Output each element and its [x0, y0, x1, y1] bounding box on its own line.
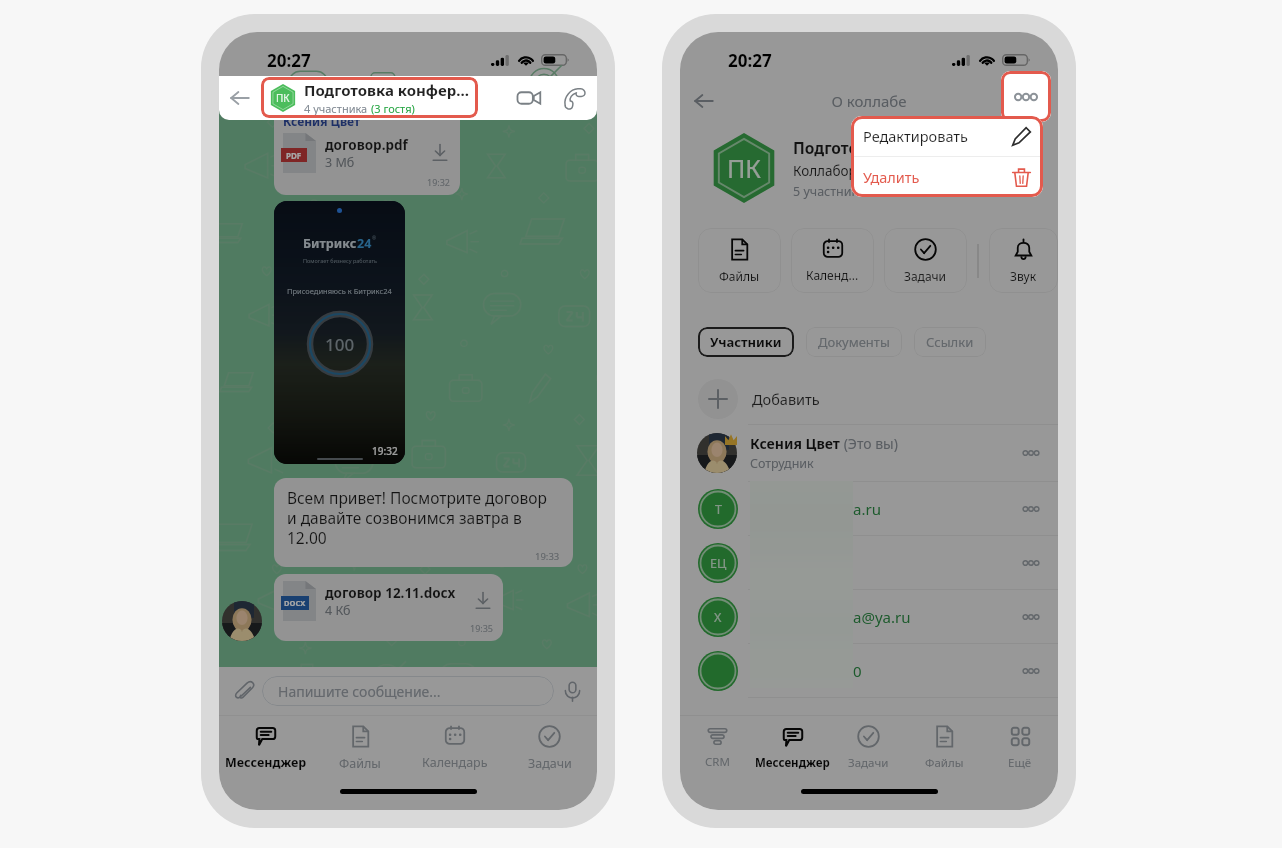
staticText: CRM: [705, 754, 730, 770]
button[interactable]: Файлы: [313, 716, 407, 780]
staticText: Подготовка конференции: [793, 137, 1001, 158]
staticText: ПК: [727, 151, 761, 185]
staticText: Задачи: [528, 755, 572, 772]
button[interactable]: Member options: [1017, 495, 1045, 523]
staticText: 19:32: [372, 444, 398, 458]
button[interactable]: Редактировать: [851, 116, 1043, 156]
button[interactable]: Добавить: [680, 374, 1058, 424]
staticText: Т: [715, 501, 722, 518]
staticText: 4 Кб: [325, 602, 351, 619]
button[interactable]: Ксения Цвет: [680, 425, 1058, 481]
button[interactable]: Удалить: [851, 157, 1043, 197]
button[interactable]: Download: [472, 590, 494, 612]
staticText: Календарь: [422, 754, 488, 771]
button[interactable]: ПК: [261, 77, 478, 118]
button[interactable]: Файлы: [906, 716, 982, 780]
staticText: Задачи: [848, 755, 889, 771]
staticText: Задачи: [904, 268, 947, 284]
staticText: Звук: [1010, 268, 1037, 284]
staticText: Мессенджер: [755, 755, 830, 771]
staticText: Присоединяюсь к Битрикс24: [287, 286, 392, 296]
staticText: ®: [372, 235, 377, 242]
staticText: a.ru: [853, 499, 881, 519]
staticText: Файлы: [339, 755, 381, 772]
staticText: договор.pdf: [325, 136, 408, 154]
button[interactable]: CRM: [680, 716, 755, 780]
button[interactable]: More options: [1001, 71, 1051, 122]
button[interactable]: Участники: [698, 327, 794, 357]
staticText: Удалить: [863, 167, 1011, 187]
staticText: договор 12.11.docx: [325, 584, 456, 602]
button[interactable]: ЕЦ: [680, 536, 1058, 589]
button[interactable]: Ссылки: [914, 327, 986, 357]
staticText: Документы: [818, 333, 890, 351]
button[interactable]: Мессенджер: [755, 716, 830, 780]
staticText: (3 гостя): [371, 101, 415, 116]
staticText: Мессенджер: [225, 754, 307, 771]
staticText: a@ya.ru: [853, 607, 911, 627]
button[interactable]: Member options: [1017, 549, 1045, 577]
button[interactable]: 0: [680, 644, 1058, 697]
staticText: Участники: [710, 333, 782, 351]
button[interactable]: Voice message: [557, 676, 587, 706]
staticText: (Это вы): [840, 434, 898, 453]
button[interactable]: Напишите сообщение...: [262, 676, 554, 706]
staticText: 20:27: [267, 49, 311, 72]
staticText: Файлы: [925, 755, 964, 771]
staticText: 5 участников: [793, 183, 873, 200]
button[interactable]: Мессенджер: [219, 716, 313, 780]
button[interactable]: Audio call: [551, 76, 597, 120]
staticText: Подготовка конфер...: [304, 80, 469, 100]
button[interactable]: Т: [680, 482, 1058, 535]
staticText: Всем привет! Посмотрите договор и давайт…: [287, 487, 560, 549]
staticText: Редактировать: [863, 126, 1011, 146]
button[interactable]: Ещё: [982, 716, 1058, 780]
button[interactable]: Back: [219, 76, 261, 120]
button[interactable]: Member options: [1017, 439, 1045, 467]
staticText: Коллаборация: [793, 162, 889, 180]
staticText: 3 Мб: [325, 154, 355, 171]
button[interactable]: Member options: [1017, 603, 1045, 631]
staticText: Помогает бизнесу работать: [303, 257, 377, 264]
button[interactable]: Календ...: [791, 228, 874, 293]
staticText: Ещё: [1008, 755, 1032, 771]
staticText: Ксения Цвет: [750, 434, 840, 453]
staticText: Календ...: [806, 267, 859, 283]
staticText: 19:35: [470, 622, 494, 634]
staticText: 20:27: [728, 49, 772, 72]
button[interactable]: Задачи: [502, 716, 597, 780]
button[interactable]: Файлы: [698, 228, 781, 293]
button[interactable]: Video call: [507, 76, 551, 120]
staticText: ПК: [276, 91, 290, 105]
button[interactable]: Звук: [989, 228, 1058, 293]
button[interactable]: Задачи: [830, 716, 906, 780]
button[interactable]: Задачи: [884, 228, 967, 293]
button[interactable]: Attach file: [229, 676, 259, 706]
button[interactable]: Х: [680, 590, 1058, 643]
button[interactable]: Документы: [806, 327, 902, 357]
staticText: 19:33: [535, 550, 560, 563]
staticText: Добавить: [752, 389, 820, 409]
staticText: DOCX: [284, 598, 306, 608]
button[interactable]: Календарь: [407, 716, 502, 780]
button[interactable]: Download: [429, 142, 451, 164]
staticText: ЕЦ: [710, 555, 727, 572]
staticText: Ксения Цвет: [283, 113, 361, 129]
staticText: 19:32: [427, 176, 451, 188]
staticText: Сотрудник: [750, 455, 814, 472]
staticText: Х: [714, 609, 722, 626]
staticText: 4 участника: [304, 101, 371, 116]
staticText: 100: [325, 333, 355, 356]
button[interactable]: Member options: [1017, 657, 1045, 685]
staticText: Битрикс: [303, 235, 357, 252]
staticText: Ссылки: [926, 333, 974, 351]
staticText: Напишите сообщение...: [278, 682, 441, 701]
staticText: PDF: [286, 150, 302, 161]
button[interactable]: Back: [680, 79, 728, 123]
staticText: О коллабе: [728, 91, 1010, 111]
staticText: 0: [853, 661, 862, 681]
staticText: Файлы: [719, 268, 760, 284]
staticText: 24: [357, 235, 372, 252]
